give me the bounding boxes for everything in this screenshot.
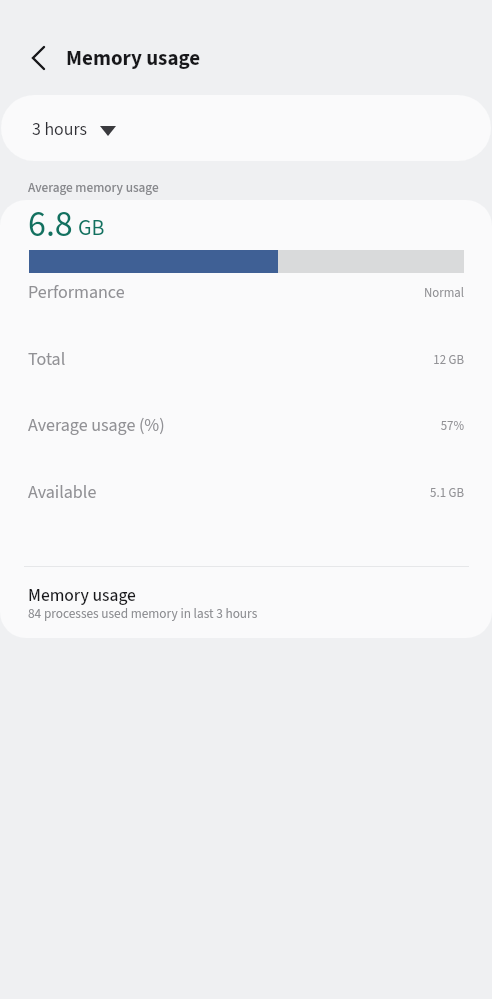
- staticText: 57%: [440, 417, 464, 435]
- staticText: 3 hours: [32, 117, 87, 142]
- button[interactable]: Average usage (%): [0, 392, 492, 459]
- staticText: 84 processes used memory in last 3 hours: [28, 604, 258, 623]
- staticText: GB: [78, 212, 105, 243]
- staticText: Average memory usage: [28, 178, 159, 197]
- staticText: Memory usage: [28, 583, 136, 608]
- button[interactable]: Total: [0, 326, 492, 393]
- staticText: 6.8: [28, 200, 73, 250]
- staticText: Total: [28, 347, 66, 373]
- staticText: 5.1 GB: [430, 484, 464, 502]
- button[interactable]: Performance: [0, 259, 492, 326]
- staticText: Normal: [424, 284, 464, 302]
- staticText: Memory usage: [66, 43, 201, 73]
- staticText: Performance: [28, 280, 125, 306]
- button[interactable]: Available: [0, 459, 492, 526]
- button[interactable]: Memory usage: [0, 565, 492, 638]
- button[interactable]: Navigate up: [13, 34, 61, 82]
- button[interactable]: 3 hours: [1, 95, 491, 161]
- staticText: Average usage (%): [28, 413, 165, 439]
- staticText: 12 GB: [433, 351, 464, 369]
- staticText: Available: [28, 480, 97, 506]
